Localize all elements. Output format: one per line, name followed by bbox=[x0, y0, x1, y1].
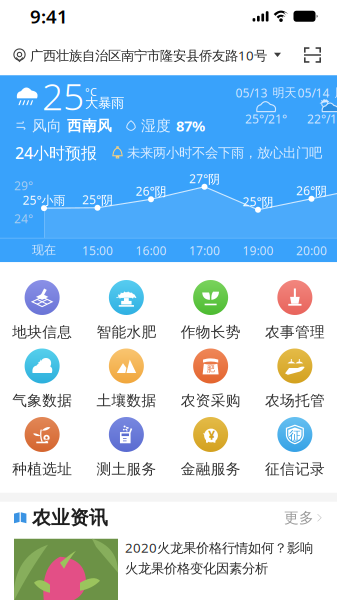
staticText: 种植选址 bbox=[12, 460, 72, 478]
staticText: 05/13 bbox=[235, 85, 267, 101]
staticText: 征 bbox=[289, 428, 301, 443]
staticText: 大暴雨 bbox=[85, 95, 124, 111]
button[interactable]: 地块信息 bbox=[0, 280, 84, 341]
button[interactable]: 更多 bbox=[284, 509, 322, 527]
staticText: 27°阴 bbox=[189, 171, 220, 187]
staticText: 05/14 bbox=[297, 85, 329, 101]
staticText: 农业资讯 bbox=[32, 506, 108, 529]
staticText: 地块信息 bbox=[12, 323, 72, 341]
staticText: 2020火龙果价格行情如何？影响火龙果价格变化因素分析 bbox=[125, 539, 313, 577]
button[interactable]: 种植选址 bbox=[0, 417, 84, 478]
staticText: 19:00 bbox=[242, 243, 273, 259]
staticText: 24° bbox=[14, 211, 33, 227]
staticText: 土壤数据 bbox=[96, 391, 156, 409]
staticText: 作物长势 bbox=[181, 323, 241, 341]
button[interactable]: 征 bbox=[253, 417, 337, 478]
button[interactable]: 广西壮族自治区南宁市隆安县侨友路10号 bbox=[13, 46, 281, 64]
staticText: 智能水肥 bbox=[96, 323, 156, 341]
staticText: 明天 bbox=[272, 85, 296, 100]
staticText: 测土服务 bbox=[96, 460, 156, 478]
staticText: 17:00 bbox=[189, 243, 220, 259]
staticText: 周四 bbox=[334, 85, 337, 100]
staticText: 9:41 bbox=[30, 4, 68, 29]
staticText: 25°/21° bbox=[245, 111, 287, 127]
staticText: ¥ bbox=[208, 427, 215, 443]
staticText: 湿度 bbox=[141, 117, 171, 135]
button[interactable]: 智能水肥 bbox=[84, 280, 168, 341]
staticText: 现在 bbox=[32, 243, 56, 257]
staticText: 西南风 bbox=[67, 117, 112, 135]
button[interactable]: 测土服务 bbox=[84, 417, 168, 478]
staticText: 气象数据 bbox=[12, 391, 72, 409]
button[interactable]: 肥 bbox=[168, 348, 253, 409]
staticText: 15:00 bbox=[82, 243, 113, 259]
button[interactable]: 农事管理 bbox=[253, 280, 337, 341]
staticText: °C bbox=[85, 85, 97, 99]
staticText: 26°阴 bbox=[296, 183, 327, 199]
staticText: 25°阴 bbox=[242, 194, 273, 210]
staticText: 25°阴 bbox=[82, 192, 113, 208]
staticText: 22°/15° bbox=[307, 111, 337, 127]
staticText: 农资采购 bbox=[181, 391, 241, 409]
button[interactable]: 扫一扫 bbox=[302, 47, 323, 63]
staticText: 24小时预报 bbox=[15, 142, 97, 163]
staticText: 肥 bbox=[207, 364, 215, 374]
staticText: 25 bbox=[42, 71, 84, 121]
staticText: 风向 bbox=[32, 117, 62, 135]
button[interactable]: 土壤数据 bbox=[84, 348, 168, 409]
staticText: 更多 bbox=[284, 509, 314, 527]
staticText: 25°小雨 bbox=[22, 192, 65, 208]
button[interactable]: 2020火龙果价格行情如何？影响火龙果价格变化因素分析 bbox=[0, 534, 337, 600]
button[interactable]: ¥ bbox=[168, 417, 253, 478]
staticText: 16:00 bbox=[135, 243, 166, 259]
staticText: 广西壮族自治区南宁市隆安县侨友路10号 bbox=[30, 46, 267, 64]
staticText: 29° bbox=[14, 178, 33, 194]
staticText: 20:00 bbox=[296, 243, 327, 259]
staticText: 未来两小时不会下雨，放心出门吧 bbox=[127, 145, 322, 161]
staticText: 26°阴 bbox=[135, 183, 166, 199]
staticText: 农场托管 bbox=[265, 391, 325, 409]
button[interactable]: 气象数据 bbox=[0, 348, 84, 409]
staticText: 征信记录 bbox=[265, 460, 325, 478]
staticText: 87% bbox=[176, 116, 205, 135]
button[interactable]: 作物长势 bbox=[168, 280, 253, 341]
button[interactable]: 农场托管 bbox=[253, 348, 337, 409]
staticText: 金融服务 bbox=[181, 460, 241, 478]
staticText: 农事管理 bbox=[265, 323, 325, 341]
